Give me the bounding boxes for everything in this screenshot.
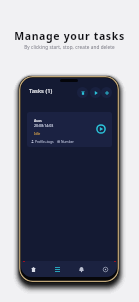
button[interactable]: Start all xyxy=(90,87,101,98)
staticText: Tasks (1) xyxy=(29,87,53,95)
button[interactable]: Settings xyxy=(93,261,117,277)
staticText: 20:08:14:03 xyxy=(34,123,54,128)
button[interactable]: Home xyxy=(21,261,45,277)
button[interactable]: Tasks xyxy=(45,261,69,277)
staticText: Profile+tags xyxy=(35,139,54,143)
staticText: By clicking start, stop, create and dele… xyxy=(24,44,115,50)
staticText: Idle xyxy=(34,131,41,136)
button[interactable]: Start task xyxy=(95,123,107,135)
button[interactable]: Add task xyxy=(101,87,112,98)
staticText: Asas xyxy=(34,118,42,123)
button[interactable]: Asas xyxy=(27,112,112,147)
staticText: Number xyxy=(61,139,74,143)
button[interactable]: Notifications xyxy=(69,261,93,277)
staticText: Manage your tasks xyxy=(14,29,125,43)
button[interactable]: Tasks (1) xyxy=(29,85,53,97)
button[interactable]: Delete xyxy=(77,87,88,98)
